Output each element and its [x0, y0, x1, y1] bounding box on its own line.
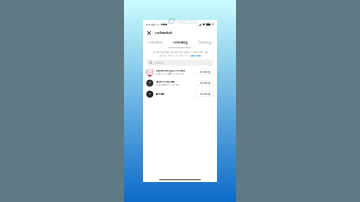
staticText: Following: [172, 41, 187, 44]
staticText: ONLINE: [177, 19, 198, 25]
staticText: Following: [200, 82, 210, 84]
staticText: Following means you see their posts in y…: [152, 51, 207, 54]
staticText: Following: [200, 71, 210, 73]
button[interactable]: Following: [196, 70, 214, 75]
button[interactable]: farmhouse_faves: [143, 78, 217, 89]
staticText: can sort and filter this list.: [159, 54, 189, 57]
staticText: 82: [212, 23, 214, 26]
button[interactable]: Creating: [192, 40, 217, 45]
button[interactable]: Search: [147, 60, 213, 66]
staticText: Learn more: [190, 54, 201, 57]
button[interactable]: Following: [196, 92, 214, 97]
staticText: Search: [154, 61, 164, 64]
staticText: Creating: [198, 41, 211, 44]
staticText: craftworkph: [155, 31, 173, 35]
button[interactable]: Learn more: [190, 54, 201, 57]
staticText: Following: [200, 93, 210, 95]
button[interactable]: adriyaa: [143, 89, 217, 100]
button[interactable]: craftworkingphilomela: [143, 67, 217, 78]
button[interactable]: Following: [168, 40, 192, 45]
staticText: adriyaa: [156, 93, 164, 96]
button[interactable]: Following: [196, 81, 214, 86]
staticText: १०:४७: [146, 22, 155, 27]
staticText: farmhouse_faves: [156, 80, 175, 83]
staticText: craftworkingphilomela: [156, 69, 185, 72]
staticText: Followers: [148, 41, 163, 44]
staticText: Studio of Happy Crafts Ltd: [156, 72, 184, 75]
staticText: ▪▫▪: [156, 23, 160, 26]
button[interactable]: Followers: [143, 40, 168, 45]
button[interactable]: Close: [146, 30, 152, 36]
staticText: a farmhouse of the 90s: [156, 83, 179, 86]
